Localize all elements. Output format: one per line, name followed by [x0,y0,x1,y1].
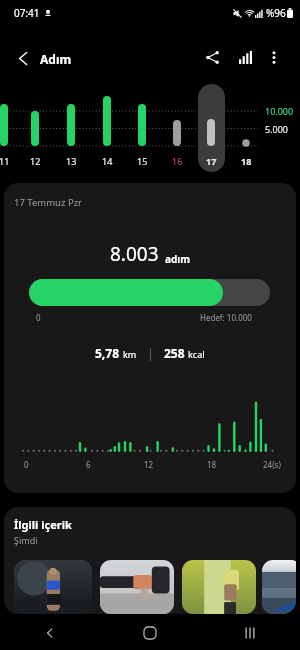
button[interactable]: Related content [14,560,92,614]
staticText: 8.003 [110,241,159,267]
staticText: Şimdi [14,534,38,546]
staticText: 5.000 [265,123,289,135]
button[interactable]: Home [100,616,200,650]
staticText: kcal [188,348,205,360]
staticText: 0 [24,459,29,470]
staticText: 11 [0,155,10,167]
staticText: Hedef: 10.000 [200,312,252,323]
staticText: 13 [66,155,77,167]
staticText: adım [165,252,191,266]
button[interactable]: Back [0,616,100,650]
staticText: %96 [266,6,286,20]
staticText: 6 [86,459,91,470]
staticText: Adım [40,51,72,67]
staticText: 15 [137,155,148,167]
staticText: 07:41 [14,6,40,20]
staticText: 10.000 [265,105,294,117]
staticText: 0 [36,312,41,323]
button[interactable]: 17 Temmuz Pzr [4,183,296,493]
staticText: 17 [206,155,217,167]
button[interactable]: Related content [262,560,296,614]
button[interactable]: Related content [182,560,256,614]
staticText: 258 [164,345,185,361]
button[interactable]: Recents [200,616,300,650]
staticText: 17 Temmuz Pzr [14,196,83,209]
staticText: İlgili içerik [14,517,72,532]
staticText: 5,78 [95,345,120,361]
staticText: 16 [172,155,183,167]
button[interactable]: Related content [100,560,174,614]
staticText: 14 [102,155,113,167]
staticText: 24(s) [263,459,281,470]
staticText: km [123,348,137,360]
staticText: 18 [207,459,217,470]
button[interactable]: Back [2,38,43,79]
button[interactable]: Share [193,38,231,76]
staticText: 18 [241,155,252,167]
staticText: 12 [30,155,41,167]
button[interactable]: Statistics [227,38,265,76]
button[interactable]: More options [255,38,293,76]
staticText: 12 [144,459,154,470]
